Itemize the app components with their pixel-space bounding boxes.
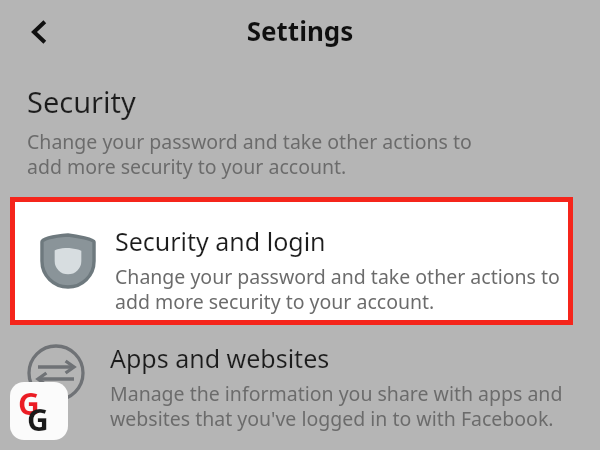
staticText: Apps and websites bbox=[110, 341, 330, 375]
staticText: Manage the information you share with ap… bbox=[110, 380, 563, 432]
staticText: G bbox=[27, 399, 49, 440]
button[interactable]: Back bbox=[14, 6, 66, 58]
button[interactable]: Security and login bbox=[10, 197, 573, 325]
staticText: Security bbox=[27, 82, 136, 121]
staticText: G bbox=[18, 383, 40, 424]
button[interactable]: Apps and websites bbox=[0, 333, 600, 445]
staticText: Security and login bbox=[115, 224, 326, 258]
staticText: Change your password and take other acti… bbox=[115, 263, 560, 315]
staticText: Change your password and take other acti… bbox=[27, 128, 472, 180]
staticText: Settings bbox=[0, 13, 600, 48]
